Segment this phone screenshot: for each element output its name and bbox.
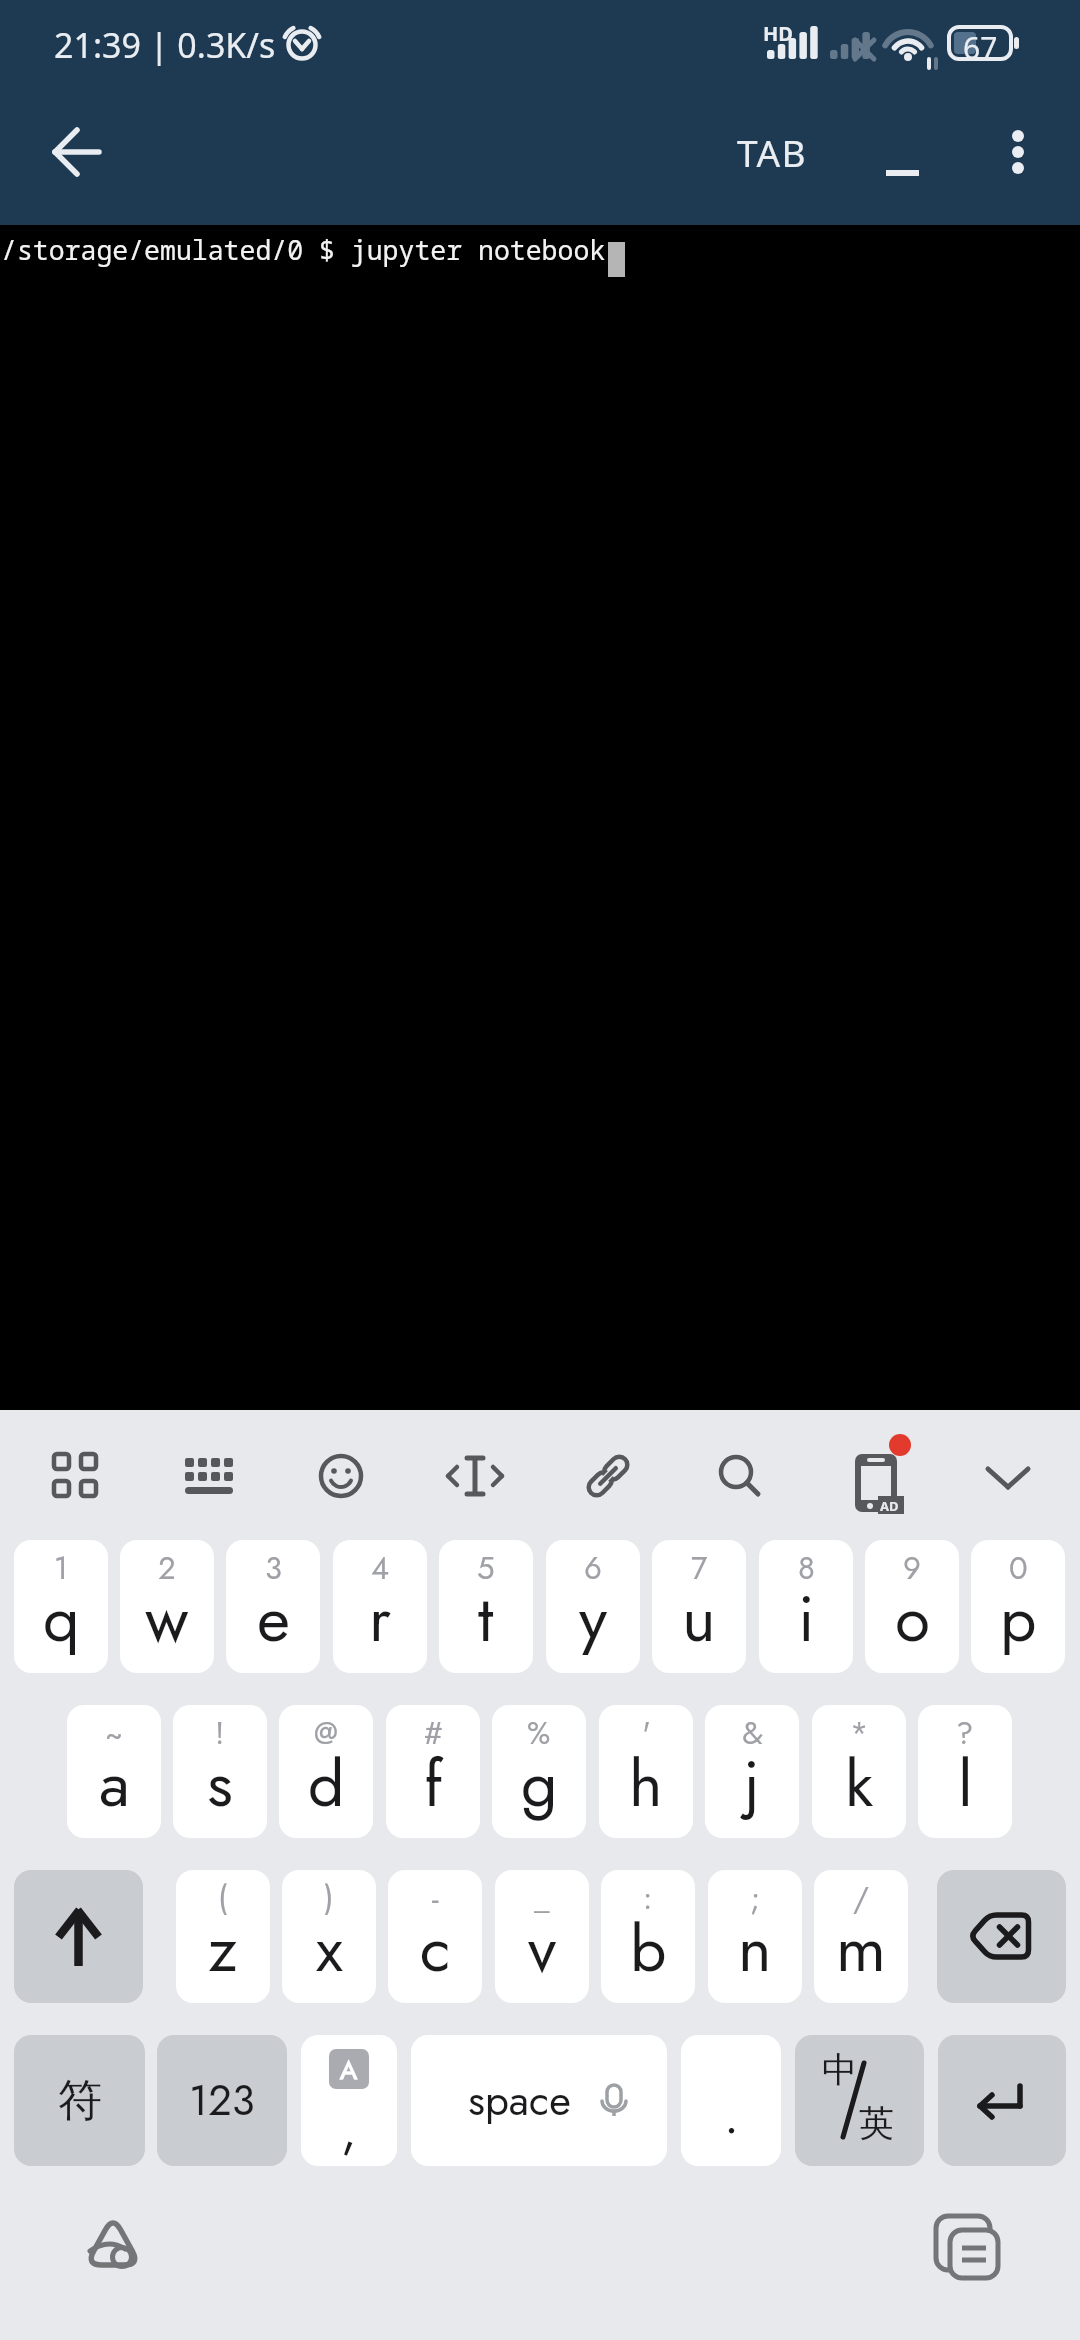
button[interactable]: @ (279, 1705, 373, 1838)
button[interactable]: % (492, 1705, 586, 1838)
staticText: z (208, 1903, 238, 1995)
button[interactable] (311, 1445, 371, 1505)
button[interactable]: 2 (120, 1540, 214, 1673)
staticText: u (682, 1573, 716, 1665)
button[interactable]: ! (173, 1705, 267, 1838)
button[interactable]: ? (918, 1705, 1012, 1838)
staticText: 6 (584, 1546, 602, 1591)
button[interactable]: & (705, 1705, 799, 1838)
staticText: m (836, 1903, 886, 1995)
staticText: ; (750, 1876, 761, 1921)
button[interactable]: 符 (14, 2035, 145, 2166)
staticText: s (207, 1738, 233, 1830)
button[interactable]: - (388, 1870, 482, 2003)
staticText: r (369, 1573, 391, 1665)
staticText: A (340, 2051, 358, 2089)
staticText: AD (880, 1497, 899, 1515)
button[interactable]: TAB (720, 120, 824, 184)
staticText: /storage/emulated/0 $ jupyter notebook (1, 232, 606, 268)
button[interactable]: * (812, 1705, 906, 1838)
staticText: 4 (371, 1546, 390, 1591)
staticText: o (895, 1573, 930, 1665)
staticText: ! (215, 1711, 225, 1756)
staticText: / (853, 1876, 869, 1921)
button[interactable]: # (386, 1705, 480, 1838)
button[interactable]: 8 (759, 1540, 853, 1673)
button[interactable]: / (814, 1870, 908, 2003)
button[interactable] (14, 1870, 143, 2003)
button[interactable] (920, 2200, 1014, 2294)
staticText: q (43, 1573, 80, 1665)
button[interactable] (578, 1445, 638, 1505)
button[interactable] (938, 2035, 1066, 2166)
staticText: 5 (477, 1546, 495, 1591)
staticText: space (468, 2070, 571, 2131)
staticText: 123 (189, 2070, 255, 2131)
staticText: c (420, 1903, 451, 1995)
button[interactable]: ; (708, 1870, 802, 2003)
staticText: v (528, 1903, 557, 1995)
button[interactable]: AD (846, 1420, 916, 1520)
button[interactable]: 6 (546, 1540, 640, 1673)
staticText: y (579, 1573, 608, 1665)
button[interactable]: 0 (971, 1540, 1065, 1673)
staticText: 7 (691, 1546, 708, 1591)
button[interactable]: ) (282, 1870, 376, 2003)
staticText: x (316, 1903, 343, 1995)
staticText: TAB (737, 127, 808, 177)
staticText: 中 (822, 2048, 857, 2092)
button[interactable] (710, 1445, 770, 1505)
button[interactable] (988, 122, 1048, 182)
staticText: # (424, 1711, 443, 1756)
staticText: l (958, 1738, 973, 1830)
staticText: ? (956, 1711, 974, 1756)
button[interactable] (937, 1870, 1066, 2003)
button[interactable] (45, 1445, 105, 1505)
button[interactable]: 1 (14, 1540, 108, 1673)
button[interactable]: 5 (439, 1540, 533, 1673)
staticText: 英 (859, 2101, 894, 2145)
staticText: _ (534, 1876, 550, 1921)
button[interactable]: 123 (157, 2035, 287, 2166)
button[interactable] (70, 2206, 154, 2290)
button[interactable]: 3 (226, 1540, 320, 1673)
button[interactable]: 9 (865, 1540, 959, 1673)
staticText: * (850, 1711, 869, 1756)
button[interactable]: . (681, 2035, 781, 2166)
staticText: b (630, 1903, 667, 1995)
button[interactable] (978, 1445, 1038, 1505)
button[interactable] (445, 1445, 505, 1505)
staticText: , (341, 2093, 357, 2165)
button[interactable]: _ (495, 1870, 589, 2003)
button[interactable]: 中 (795, 2035, 924, 2166)
staticText: ) (324, 1876, 334, 1921)
button[interactable] (30, 107, 120, 197)
button[interactable]: ~ (67, 1705, 161, 1838)
button[interactable]: 4 (333, 1540, 427, 1673)
staticText: e (257, 1573, 290, 1665)
staticText: 2 (158, 1546, 176, 1591)
staticText: . (724, 2079, 739, 2151)
staticText: t (478, 1573, 494, 1665)
button[interactable]: 7 (652, 1540, 746, 1673)
button[interactable]: A (301, 2035, 397, 2166)
staticText: 21:39 | 0.3K/s (54, 22, 276, 68)
staticText: w (145, 1573, 189, 1665)
staticText: 符 (58, 2073, 102, 2128)
button[interactable]: : (601, 1870, 695, 2003)
staticText: a (99, 1738, 130, 1830)
button[interactable]: ( (176, 1870, 270, 2003)
button[interactable]: ' (599, 1705, 693, 1838)
staticText: p (1000, 1573, 1037, 1665)
staticText: % (527, 1711, 551, 1756)
staticText: g (521, 1738, 558, 1830)
staticText: @ (314, 1711, 338, 1756)
button[interactable]: space (411, 2035, 667, 2166)
staticText: ( (218, 1876, 228, 1921)
staticText: 3 (265, 1546, 282, 1591)
staticText: ' (642, 1711, 651, 1756)
staticText: n (738, 1903, 772, 1995)
button[interactable] (178, 1445, 238, 1505)
button[interactable] (870, 130, 934, 178)
staticText: 9 (903, 1546, 921, 1591)
